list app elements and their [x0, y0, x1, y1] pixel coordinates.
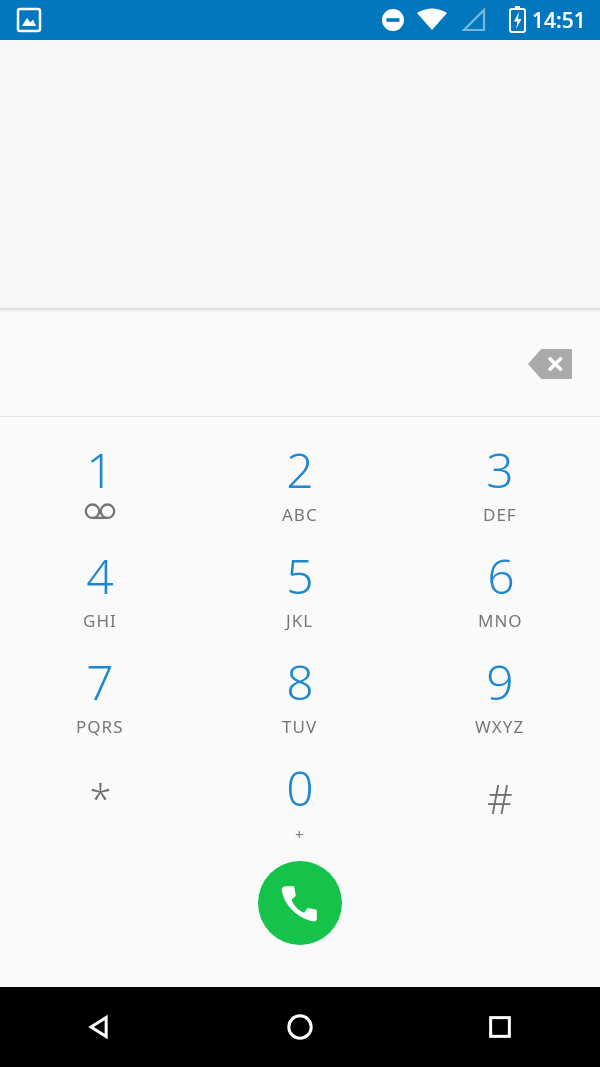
- button[interactable]: 5: [200, 537, 400, 632]
- staticText: 14:51: [532, 6, 586, 35]
- staticText: MNO: [478, 609, 523, 632]
- staticText: 7: [86, 649, 114, 714]
- staticText: ABC: [282, 503, 318, 526]
- button[interactable]: 7: [0, 643, 200, 738]
- button[interactable]: Backspace: [522, 338, 578, 390]
- button[interactable]: 2: [200, 431, 400, 526]
- button[interactable]: Recent apps: [400, 987, 600, 1067]
- staticText: 3: [486, 437, 514, 502]
- button[interactable]: 6: [400, 537, 600, 632]
- button[interactable]: 3: [400, 431, 600, 526]
- staticText: 1: [86, 437, 114, 502]
- staticText: 8: [286, 649, 314, 714]
- staticText: 6: [487, 543, 515, 608]
- staticText: 2: [286, 437, 314, 502]
- staticText: TUV: [282, 715, 318, 738]
- button[interactable]: Home: [200, 987, 400, 1067]
- staticText: 9: [486, 649, 514, 714]
- staticText: WXYZ: [475, 715, 525, 738]
- staticText: JKL: [286, 609, 314, 632]
- staticText: 4: [86, 543, 114, 608]
- button[interactable]: 4: [0, 537, 200, 632]
- staticText: #: [487, 771, 513, 825]
- staticText: PQRS: [76, 715, 124, 738]
- button[interactable]: 0: [200, 749, 400, 844]
- button[interactable]: 9: [400, 643, 600, 738]
- button[interactable]: #: [400, 749, 600, 825]
- button[interactable]: 1: [0, 431, 200, 520]
- button[interactable]: *: [0, 749, 200, 825]
- staticText: 0: [286, 755, 314, 820]
- staticText: 5: [286, 543, 314, 608]
- staticText: DEF: [483, 503, 517, 526]
- button[interactable]: Call: [258, 861, 342, 945]
- staticText: +: [295, 824, 305, 844]
- staticText: GHI: [83, 609, 117, 632]
- button[interactable]: 8: [200, 643, 400, 738]
- button[interactable]: Back: [0, 987, 200, 1067]
- staticText: *: [89, 771, 112, 825]
